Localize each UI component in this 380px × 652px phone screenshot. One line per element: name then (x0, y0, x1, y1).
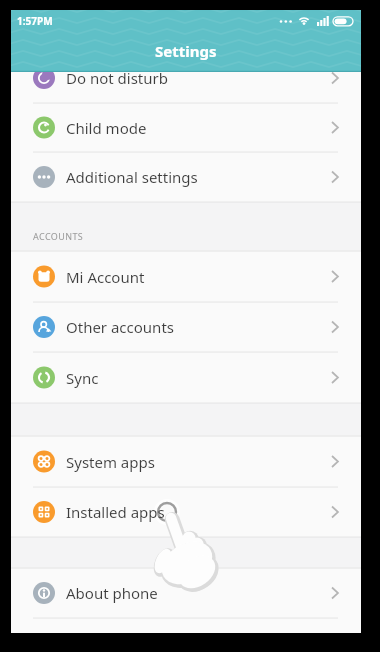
staticText: About phone (66, 583, 158, 603)
button[interactable]: System apps (11, 436, 361, 487)
button[interactable]: Mi Account (11, 251, 361, 302)
staticText: Installed apps (66, 502, 165, 522)
staticText: Mi Account (66, 267, 145, 287)
staticText: Child mode (66, 118, 147, 138)
staticText: Sync (66, 368, 99, 388)
button[interactable]: Installed apps (11, 487, 361, 537)
staticText: Additional settings (66, 167, 198, 187)
staticText: 1:57PM (17, 14, 53, 28)
button[interactable]: Child mode (11, 103, 361, 152)
staticText: ACCOUNTS (33, 230, 84, 242)
button[interactable]: Additional settings (11, 152, 361, 202)
staticText: Do not disturb (66, 68, 168, 88)
button[interactable]: Other accounts (11, 302, 361, 352)
button[interactable]: About phone (11, 568, 361, 618)
button[interactable]: Do not disturb (11, 53, 361, 103)
staticText: System apps (66, 452, 155, 472)
staticText: Other accounts (66, 317, 174, 337)
button[interactable]: Sync (11, 352, 361, 403)
staticText: Settings (155, 41, 217, 61)
